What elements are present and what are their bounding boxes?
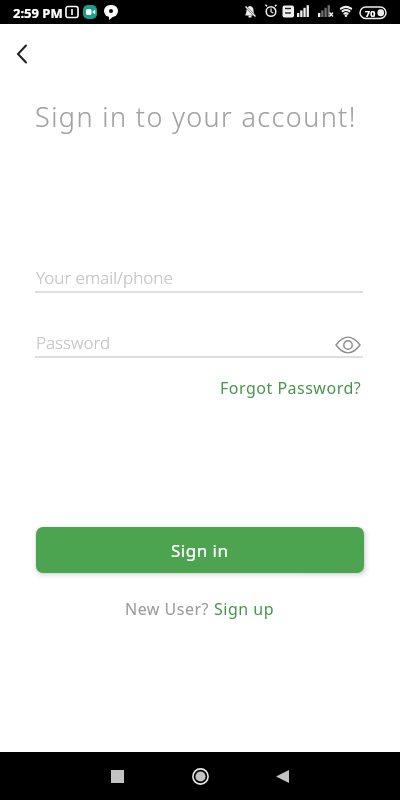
button[interactable] — [258, 752, 306, 800]
button[interactable] — [93, 752, 141, 800]
button[interactable]: Forgot Password? — [220, 377, 362, 399]
staticText: Password — [36, 331, 111, 354]
button[interactable] — [35, 323, 325, 359]
staticText: Sign in to your account! — [35, 98, 357, 135]
button[interactable]: Sign in — [36, 527, 364, 573]
button[interactable] — [6, 40, 34, 68]
button[interactable]: Sign up — [214, 598, 275, 620]
button[interactable] — [35, 258, 363, 294]
staticText: Your email/phone — [36, 266, 173, 289]
button[interactable] — [332, 333, 364, 357]
staticText: New User? — [125, 598, 214, 620]
staticText: Sign in — [171, 539, 229, 562]
staticText: 70 — [365, 7, 376, 19]
button[interactable] — [176, 752, 224, 800]
staticText: 2:59 PM — [13, 4, 63, 22]
